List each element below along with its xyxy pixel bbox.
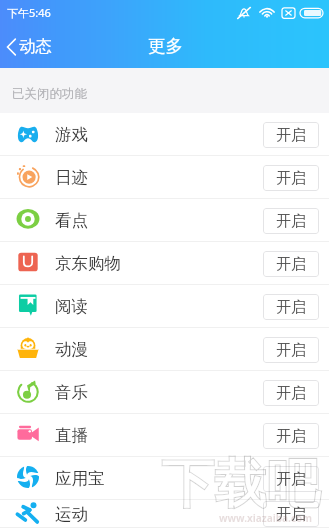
staticText: 日迹 bbox=[55, 167, 88, 188]
staticText: 应用宝 bbox=[55, 468, 105, 489]
staticText: 看点 bbox=[55, 210, 88, 231]
button[interactable]: 应用宝 bbox=[0, 457, 329, 500]
button[interactable]: 开启 bbox=[263, 423, 319, 449]
staticText: www.xiazaiba.com bbox=[219, 511, 313, 525]
staticText: 音乐 bbox=[55, 382, 88, 403]
button[interactable]: 阅读 bbox=[0, 285, 329, 328]
staticText: 阅读 bbox=[55, 296, 88, 317]
button[interactable]: 直播 bbox=[0, 414, 329, 457]
button[interactable]: 开启 bbox=[263, 122, 319, 148]
button[interactable]: 游戏 bbox=[0, 113, 329, 156]
button[interactable]: 开启 bbox=[263, 208, 319, 234]
staticText: 运动 bbox=[55, 504, 88, 525]
staticText: 开启 bbox=[276, 427, 306, 446]
button[interactable]: 开启 bbox=[263, 294, 319, 320]
staticText: 动漫 bbox=[55, 339, 88, 360]
staticText: 开启 bbox=[276, 505, 306, 524]
staticText: 开启 bbox=[276, 255, 306, 274]
button[interactable]: 京东购物 bbox=[0, 242, 329, 285]
button[interactable]: 开启 bbox=[263, 380, 319, 406]
staticText: 已关闭的功能 bbox=[12, 86, 87, 102]
staticText: 游戏 bbox=[55, 124, 88, 145]
staticText: 开启 bbox=[276, 384, 306, 403]
button[interactable]: 返回动态 bbox=[0, 30, 60, 63]
button[interactable]: 运动 bbox=[0, 500, 329, 528]
staticText: 更多 bbox=[148, 35, 183, 57]
staticText: 开启 bbox=[276, 298, 306, 317]
staticText: 开启 bbox=[276, 341, 306, 360]
button[interactable]: 开启 bbox=[263, 501, 319, 527]
button[interactable]: 动漫 bbox=[0, 328, 329, 371]
staticText: 开启 bbox=[276, 126, 306, 145]
staticText: 下载吧 bbox=[161, 451, 320, 518]
button[interactable]: 音乐 bbox=[0, 371, 329, 414]
staticText: 动态 bbox=[19, 36, 52, 57]
button[interactable]: 看点 bbox=[0, 199, 329, 242]
staticText: 下午5:46 bbox=[7, 5, 51, 20]
staticText: 京东购物 bbox=[55, 253, 121, 274]
button[interactable]: 开启 bbox=[263, 466, 319, 492]
button[interactable]: 开启 bbox=[263, 165, 319, 191]
staticText: 开启 bbox=[276, 470, 306, 489]
staticText: 开启 bbox=[276, 212, 306, 231]
button[interactable]: 开启 bbox=[263, 251, 319, 277]
staticText: 开启 bbox=[276, 169, 306, 188]
staticText: 直播 bbox=[55, 425, 88, 446]
button[interactable]: 日迹 bbox=[0, 156, 329, 199]
button[interactable]: 开启 bbox=[263, 337, 319, 363]
